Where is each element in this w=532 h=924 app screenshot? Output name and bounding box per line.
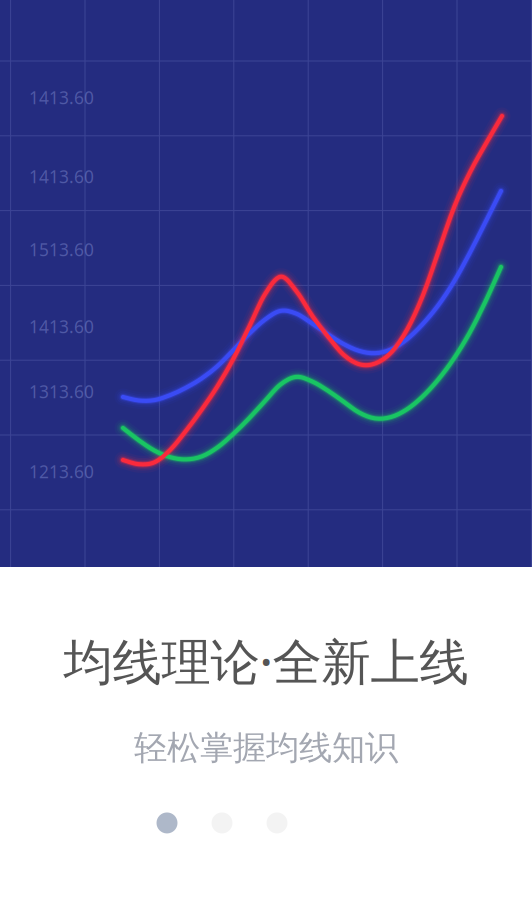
staticText: 1413.60: [29, 315, 94, 338]
button[interactable]: Page 3: [266, 812, 287, 833]
staticText: 1313.60: [29, 380, 94, 403]
staticText: 1413.60: [29, 165, 94, 188]
staticText: 轻松掌握均线知识: [134, 727, 398, 768]
staticText: 1513.60: [29, 238, 94, 261]
staticText: 1213.60: [29, 460, 94, 483]
button[interactable]: Page 2: [211, 812, 232, 833]
button[interactable]: Page 1: [156, 812, 177, 833]
staticText: 均线理论·全新上线: [63, 628, 468, 693]
staticText: 1413.60: [29, 86, 94, 109]
